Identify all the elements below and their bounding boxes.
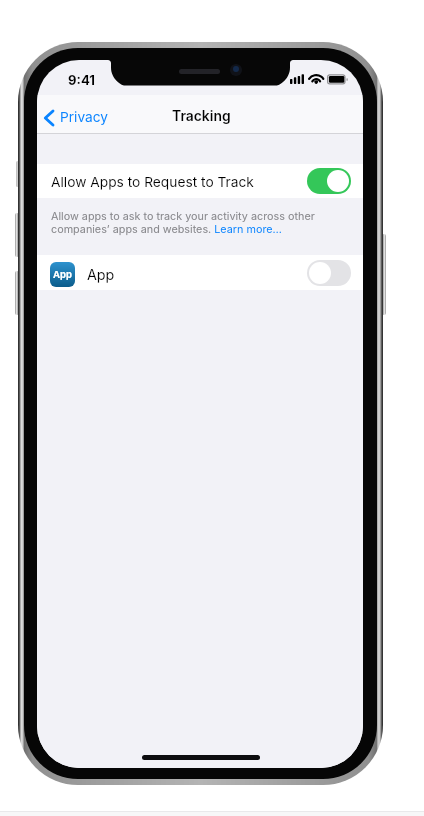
staticText: Tracking [172,108,231,125]
button[interactable]: Switch on [307,168,351,194]
button[interactable]: Switch off [307,260,351,286]
button[interactable]: Allow Apps to Request to Track [37,164,363,198]
staticText: Allow apps to ask to track your activity… [51,210,349,235]
button[interactable]: Privacy [37,102,118,129]
staticText: Privacy [60,109,108,126]
staticText: 9:41 [68,72,95,88]
staticText: App [87,266,115,283]
button[interactable]: App [37,255,363,290]
staticText: Allow Apps to Request to Track [51,174,254,191]
staticText: App [53,269,72,280]
